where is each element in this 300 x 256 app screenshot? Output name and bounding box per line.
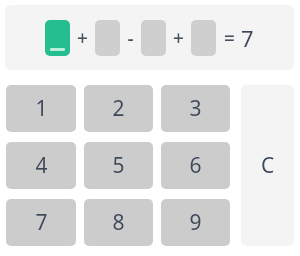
staticText: 2 <box>112 94 125 123</box>
button[interactable] <box>141 20 166 56</box>
staticText: + <box>77 25 88 51</box>
button[interactable]: 3 <box>161 85 230 132</box>
button[interactable]: 4 <box>6 142 76 189</box>
button[interactable]: 2 <box>84 85 153 132</box>
staticText: 1 <box>35 94 48 123</box>
button[interactable] <box>191 20 216 56</box>
staticText: - <box>127 25 134 51</box>
button[interactable]: C <box>241 85 294 246</box>
staticText: 4 <box>35 151 48 180</box>
staticText: = <box>224 25 235 51</box>
staticText: 7 <box>35 208 48 237</box>
staticText: C <box>261 151 275 180</box>
button[interactable] <box>45 20 70 56</box>
button[interactable]: 5 <box>84 142 153 189</box>
staticText: 9 <box>189 208 202 237</box>
staticText: 8 <box>112 208 125 237</box>
button[interactable] <box>95 20 120 56</box>
button[interactable]: 1 <box>6 85 76 132</box>
button[interactable]: 7 <box>6 199 76 246</box>
staticText: 7 <box>241 23 254 53</box>
button[interactable]: 6 <box>161 142 230 189</box>
staticText: 6 <box>189 151 202 180</box>
staticText: + <box>173 25 184 51</box>
staticText: 5 <box>112 151 125 180</box>
staticText: 3 <box>189 94 202 123</box>
button[interactable]: 8 <box>84 199 153 246</box>
button[interactable]: 9 <box>161 199 230 246</box>
